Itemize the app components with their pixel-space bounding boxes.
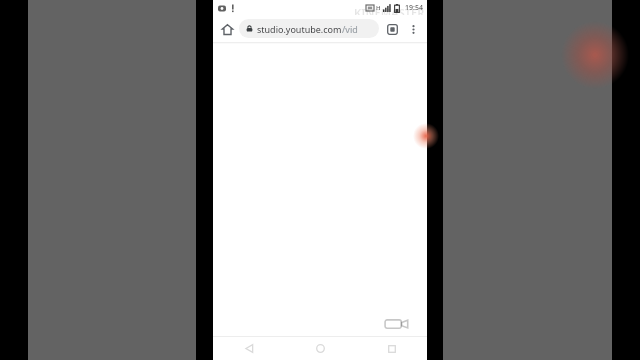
button[interactable]: Home bbox=[217, 19, 237, 39]
button[interactable]: Switch tabs bbox=[382, 19, 402, 39]
staticText: KINEMASTER bbox=[354, 5, 425, 20]
button[interactable]: More options bbox=[403, 19, 423, 39]
button[interactable]: Back bbox=[213, 337, 285, 360]
button[interactable]: Home bbox=[285, 337, 356, 360]
button[interactable]: Recent apps bbox=[356, 337, 427, 360]
staticText: 19:54 bbox=[405, 3, 423, 13]
staticText: studio.youtube.com bbox=[257, 23, 342, 35]
button[interactable]: studio.youtube.com bbox=[239, 19, 379, 38]
staticText: /vid bbox=[342, 23, 358, 35]
staticText: H bbox=[376, 4, 381, 12]
